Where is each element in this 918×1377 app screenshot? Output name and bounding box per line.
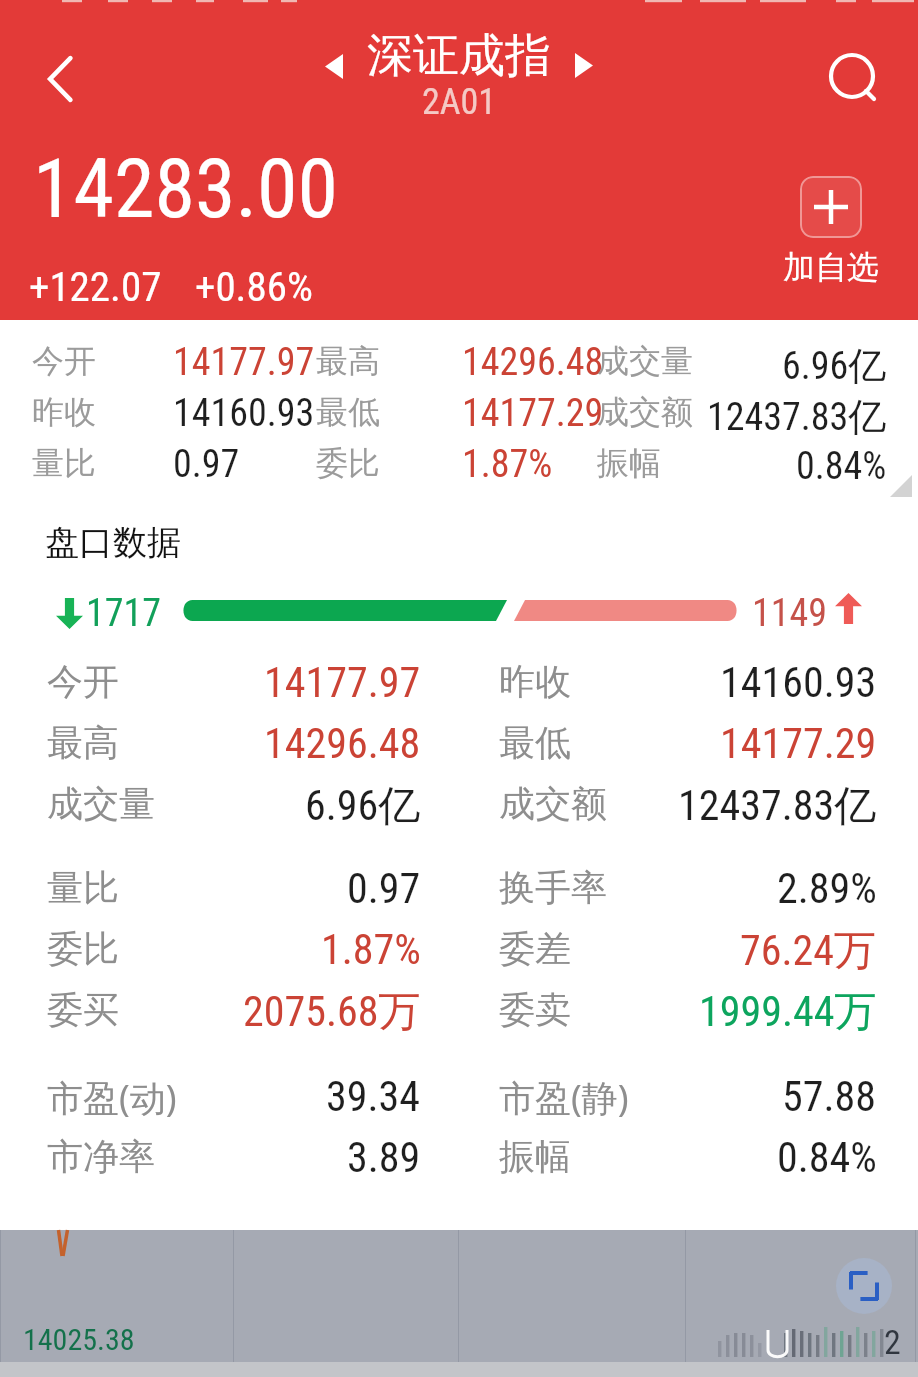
staticText: 成交额	[499, 781, 607, 826]
staticText: 昨收	[499, 659, 571, 704]
staticText: 振幅	[499, 1134, 571, 1179]
staticText: 委买	[47, 987, 119, 1032]
staticText: 最低	[316, 392, 380, 432]
staticText: 57.88	[782, 1072, 877, 1121]
staticText: 委卖	[499, 987, 571, 1032]
staticText: +0.86%	[195, 263, 313, 311]
button[interactable]: Fullscreen	[836, 1258, 892, 1314]
staticText: 今开	[32, 341, 96, 381]
staticText: 量比	[32, 443, 96, 483]
staticText: 1717	[86, 591, 162, 636]
staticText: 换手率	[499, 865, 607, 910]
staticText: 成交量	[597, 341, 693, 381]
staticText: 成交量	[47, 781, 155, 826]
staticText: 1999.44万	[699, 986, 877, 1036]
staticText: 2	[884, 1322, 901, 1362]
staticText: 盘口数据	[45, 521, 181, 564]
staticText: 0.97	[173, 442, 240, 487]
button[interactable]: Expand	[890, 475, 912, 497]
staticText: 2A01	[422, 81, 497, 123]
button[interactable]: 加自选	[783, 176, 879, 287]
staticText: 0.97	[347, 864, 421, 913]
staticText: 昨收	[32, 392, 96, 432]
staticText: 14160.93	[173, 391, 315, 436]
staticText: 0.84%	[796, 444, 887, 489]
staticText: 委比	[316, 443, 380, 483]
button[interactable]: Back	[18, 37, 102, 121]
staticText: 12437.83亿	[707, 393, 887, 439]
staticText: 14160.93	[720, 658, 877, 707]
staticText: 6.96亿	[305, 780, 421, 830]
staticText: 量比	[47, 865, 119, 910]
staticText: 市盈(静)	[499, 1073, 629, 1122]
button[interactable]: Search	[811, 37, 895, 121]
staticText: 最低	[499, 720, 571, 765]
staticText: 委差	[499, 926, 571, 971]
staticText: 76.24万	[740, 925, 877, 975]
staticText: 6.96亿	[782, 342, 887, 388]
staticText: 3.89	[347, 1133, 421, 1182]
staticText: 委比	[47, 926, 119, 971]
staticText: 成交额	[597, 392, 693, 432]
staticText: 2075.68万	[243, 986, 421, 1036]
staticText: 市盈(动)	[47, 1073, 177, 1122]
staticText: 14296.48	[462, 340, 604, 385]
staticText: 市净率	[47, 1134, 155, 1179]
staticText: 14025.38	[23, 1322, 135, 1357]
staticText: 12437.83亿	[678, 780, 877, 830]
staticText: 14177.29	[462, 391, 604, 436]
staticText: 0.84%	[777, 1133, 877, 1182]
staticText: 最高	[47, 720, 119, 765]
staticText: +122.07	[29, 263, 162, 311]
staticText: 14177.97	[173, 340, 315, 385]
staticText: 39.34	[326, 1072, 421, 1121]
staticText: 14296.48	[264, 719, 421, 768]
staticText: 深证成指	[367, 27, 551, 85]
staticText: 1.87%	[462, 442, 553, 487]
staticText: 2.89%	[777, 864, 877, 913]
staticText: 加自选	[783, 247, 879, 287]
staticText: 14177.97	[264, 658, 421, 707]
staticText: 14283.00	[33, 141, 338, 237]
staticText: 1.87%	[321, 925, 421, 974]
staticText: 14177.29	[720, 719, 877, 768]
staticText: 最高	[316, 341, 380, 381]
staticText: 今开	[47, 659, 119, 704]
staticText: 1149	[752, 591, 828, 636]
staticText: 振幅	[597, 443, 661, 483]
